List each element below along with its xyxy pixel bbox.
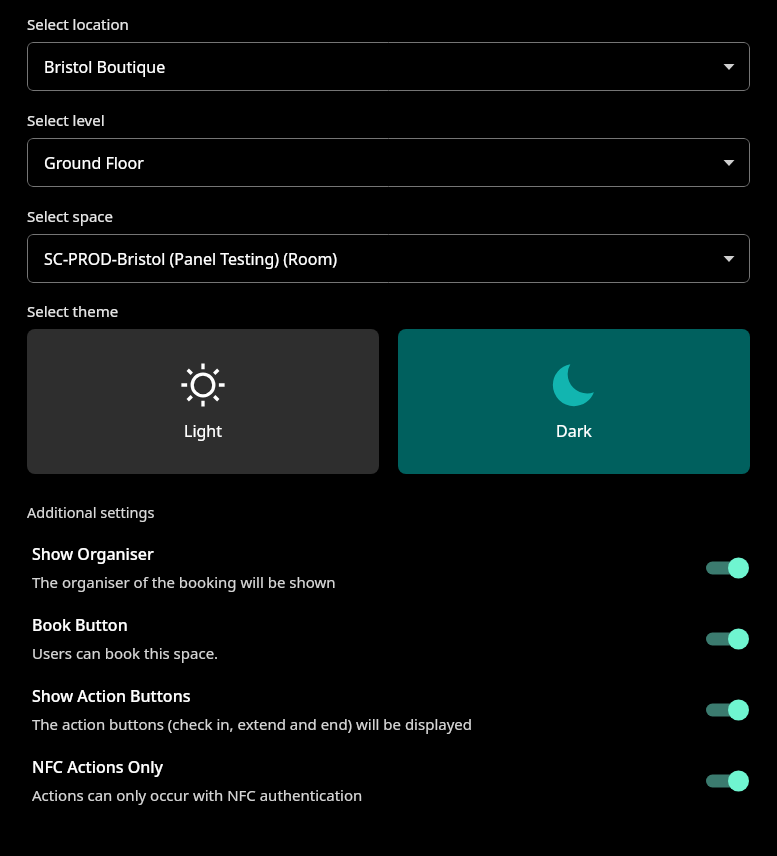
staticText: Select theme	[27, 301, 119, 321]
button[interactable]: Ground Floor	[27, 138, 750, 187]
staticText: SC-PROD-Bristol (Panel Testing) (Room)	[44, 248, 338, 270]
staticText: Select space	[27, 206, 114, 226]
staticText: Show Organiser	[32, 543, 154, 565]
staticText: Bristol Boutique	[44, 56, 166, 78]
staticText: Dark	[556, 420, 592, 442]
staticText: Book Button	[32, 614, 128, 636]
staticText: NFC Actions Only	[32, 756, 164, 778]
button[interactable]: Show Organiser	[704, 553, 750, 583]
staticText: Users can book this space.	[32, 643, 219, 663]
button[interactable]: Light theme	[27, 329, 379, 474]
staticText: The organiser of the booking will be sho…	[32, 572, 336, 592]
other: Light theme	[180, 362, 226, 408]
button[interactable]: Show Organiser	[32, 534, 750, 601]
other: Dark theme	[551, 362, 597, 408]
staticText: Light	[184, 420, 223, 442]
button[interactable]: NFC Actions Only	[32, 747, 750, 814]
staticText: Select level	[27, 110, 105, 130]
button[interactable]: SC-PROD-Bristol (Panel Testing) (Room)	[27, 234, 750, 283]
button[interactable]: Dark theme	[398, 329, 750, 474]
staticText: Show Action Buttons	[32, 685, 191, 707]
button[interactable]: Book Button	[32, 605, 750, 672]
button[interactable]: Bristol Boutique	[27, 42, 750, 91]
button[interactable]: NFC Actions Only	[704, 766, 750, 796]
button[interactable]: Show Action Buttons	[32, 676, 750, 743]
staticText: Ground Floor	[44, 152, 144, 174]
staticText: Select location	[27, 14, 129, 34]
button[interactable]: Show Action Buttons	[704, 695, 750, 725]
staticText: The action buttons (check in, extend and…	[32, 714, 473, 734]
staticText: Actions can only occur with NFC authenti…	[32, 785, 363, 805]
staticText: Additional settings	[27, 502, 155, 522]
button[interactable]: Book Button	[704, 624, 750, 654]
